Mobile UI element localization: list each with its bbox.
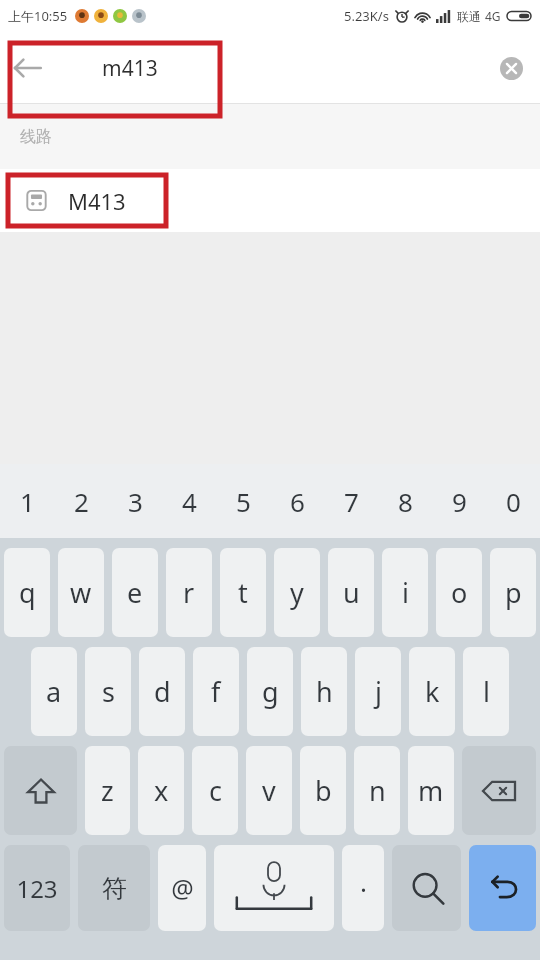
button[interactable]: @ <box>158 845 206 931</box>
staticText: b <box>315 772 332 809</box>
staticText: z <box>101 772 114 809</box>
button[interactable]: Enter <box>469 845 536 931</box>
staticText: u <box>343 574 360 611</box>
staticText: m413 <box>102 54 158 83</box>
button[interactable]: o <box>436 548 482 637</box>
button[interactable]: i <box>382 548 428 637</box>
staticText: d <box>154 673 171 710</box>
staticText: 0 <box>506 484 521 519</box>
staticText: q <box>19 574 36 611</box>
staticText: h <box>316 673 333 710</box>
button[interactable]: d <box>139 647 185 736</box>
button[interactable]: 5 <box>216 464 270 538</box>
staticText: w <box>70 574 92 611</box>
button[interactable]: m413 <box>54 32 482 104</box>
staticText: f <box>211 673 221 710</box>
staticText: p <box>505 574 522 611</box>
staticText: 3 <box>128 484 143 519</box>
staticText: t <box>238 574 248 611</box>
staticText: a <box>46 673 62 710</box>
button[interactable]: u <box>328 548 374 637</box>
staticText: e <box>127 574 143 611</box>
button[interactable]: y <box>274 548 320 637</box>
button[interactable]: 1 <box>0 464 54 538</box>
button[interactable]: p <box>490 548 536 637</box>
staticText: o <box>451 574 468 611</box>
button[interactable]: Shift <box>4 746 77 835</box>
staticText: · <box>360 871 367 906</box>
button[interactable]: 4 <box>162 464 216 538</box>
button[interactable]: s <box>85 647 131 736</box>
button[interactable]: j <box>355 647 401 736</box>
button[interactable]: m <box>408 746 454 835</box>
button[interactable]: g <box>247 647 293 736</box>
staticText: c <box>209 772 222 809</box>
staticText: 123 <box>16 872 58 905</box>
staticText: 5 <box>236 484 251 519</box>
button[interactable]: w <box>58 548 104 637</box>
button[interactable]: z <box>85 746 130 835</box>
staticText: 2 <box>74 484 89 519</box>
staticText: r <box>183 574 195 611</box>
button[interactable]: k <box>409 647 455 736</box>
staticText: 上午10:55 <box>8 7 68 25</box>
staticText: k <box>425 673 440 710</box>
staticText: 线路 <box>20 127 52 147</box>
staticText: 7 <box>344 484 359 519</box>
staticText: 符 <box>102 873 127 904</box>
staticText: 1 <box>20 484 35 519</box>
staticText: m <box>418 772 444 809</box>
button[interactable]: e <box>112 548 158 637</box>
button[interactable]: Search <box>392 845 461 931</box>
button[interactable]: l <box>463 647 509 736</box>
button[interactable]: 6 <box>270 464 324 538</box>
staticText: 联通 <box>457 9 481 24</box>
button[interactable]: b <box>300 746 346 835</box>
staticText: @ <box>171 871 194 905</box>
button[interactable]: v <box>246 746 292 835</box>
button[interactable]: Clear text <box>482 32 540 104</box>
button[interactable]: 8 <box>378 464 432 538</box>
staticText: v <box>262 772 276 809</box>
button[interactable]: Space <box>214 845 334 931</box>
staticText: 5.23K/s <box>344 7 389 25</box>
staticText: s <box>102 673 115 710</box>
button[interactable]: a <box>31 647 77 736</box>
button[interactable]: c <box>192 746 238 835</box>
button[interactable]: 符 <box>78 845 150 931</box>
button[interactable]: 123 <box>4 845 70 931</box>
staticText: l <box>483 673 490 710</box>
staticText: 6 <box>290 484 305 519</box>
staticText: n <box>369 772 386 809</box>
staticText: M413 <box>68 186 126 216</box>
button[interactable]: Back <box>0 32 54 104</box>
staticText: i <box>402 574 409 611</box>
staticText: 4G <box>485 8 501 24</box>
staticText: j <box>375 673 382 710</box>
staticText: 9 <box>452 484 467 519</box>
button[interactable]: Backspace <box>462 746 536 835</box>
button[interactable]: 9 <box>432 464 486 538</box>
button[interactable]: M413 <box>0 169 540 232</box>
button[interactable]: r <box>166 548 212 637</box>
button[interactable]: q <box>4 548 50 637</box>
staticText: g <box>262 673 279 710</box>
button[interactable]: 7 <box>324 464 378 538</box>
button[interactable]: · <box>342 845 384 931</box>
button[interactable]: x <box>138 746 184 835</box>
button[interactable]: n <box>354 746 400 835</box>
button[interactable]: f <box>193 647 239 736</box>
button[interactable]: t <box>220 548 266 637</box>
staticText: x <box>154 772 169 809</box>
staticText: y <box>290 574 304 611</box>
button[interactable]: h <box>301 647 347 736</box>
button[interactable]: 2 <box>54 464 108 538</box>
staticText: 8 <box>398 484 413 519</box>
button[interactable]: 3 <box>108 464 162 538</box>
staticText: 4 <box>182 484 197 519</box>
button[interactable]: 0 <box>486 464 540 538</box>
